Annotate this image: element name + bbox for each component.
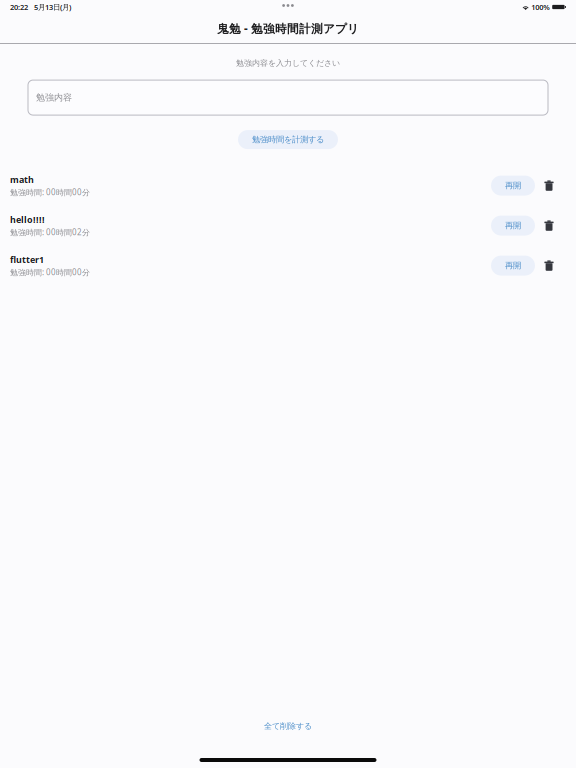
button[interactable]: 再開 [491,216,535,236]
staticText: 勉強時間: 00時間00分 [10,267,90,278]
staticText: 勉強内容 [36,92,72,103]
staticText: 全て削除する [264,721,312,731]
staticText: 勉強時間: 00時間00分 [10,187,90,198]
button[interactable]: 再開 [491,256,535,276]
staticText: 勉強内容を入力してください [236,58,340,68]
staticText: 鬼勉 - 勉強時間計測アプリ [217,21,359,36]
staticText: 100% [529,2,552,12]
button[interactable]: 勉強時間を計測する [238,130,338,149]
staticText: 再開 [505,180,521,191]
button[interactable]: 再開 [491,176,535,196]
button[interactable]: 削除 [535,253,563,279]
staticText: 20:22 5月13日(月) [10,2,71,12]
staticText: 勉強時間を計測する [252,134,324,145]
button[interactable]: 削除 [535,213,563,239]
staticText: hello!!!! [10,213,45,226]
staticText: flutter1 [10,253,44,266]
staticText: 勉強時間: 00時間02分 [10,227,90,238]
button[interactable]: 削除 [535,173,563,199]
staticText: 再開 [505,260,521,271]
button[interactable]: マルチタスク [268,0,308,11]
button[interactable]: 全て削除する [259,716,317,736]
staticText: 再開 [505,220,521,231]
staticText: math [10,173,34,186]
